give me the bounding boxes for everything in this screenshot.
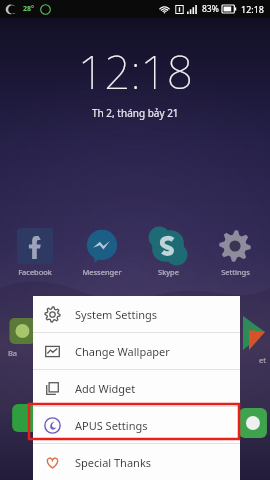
staticText: Change Wallpaper (75, 344, 170, 359)
button[interactable]: Change Wallpaper (33, 333, 240, 369)
staticText: Add Widget (75, 381, 136, 396)
staticText: 28° (23, 4, 34, 14)
button[interactable]: Settings (204, 228, 266, 277)
staticText: Ba (8, 348, 18, 358)
staticText: System Settings (75, 307, 158, 322)
button[interactable]: APUS Settings (33, 407, 240, 443)
button[interactable]: Skype (137, 228, 199, 277)
staticText: Settings (221, 267, 250, 277)
staticText: APUS Settings (75, 418, 148, 433)
staticText: et (259, 355, 266, 365)
button[interactable]: System Settings (33, 296, 240, 332)
staticText: 12:18 (241, 3, 265, 15)
button[interactable]: Special Thanks (33, 444, 240, 480)
staticText: Special Thanks (75, 455, 152, 470)
button[interactable]: Messenger (71, 228, 133, 277)
button[interactable]: Add Widget (33, 370, 240, 406)
staticText: 12:18 (78, 40, 193, 103)
staticText: Th 2, tháng bảy 21 (92, 106, 179, 120)
staticText: 83% (202, 3, 219, 15)
button[interactable]: Facebook (4, 228, 66, 277)
staticText: Skype (158, 267, 179, 277)
staticText: Messenger (82, 267, 122, 277)
staticText: Facebook (18, 267, 52, 277)
